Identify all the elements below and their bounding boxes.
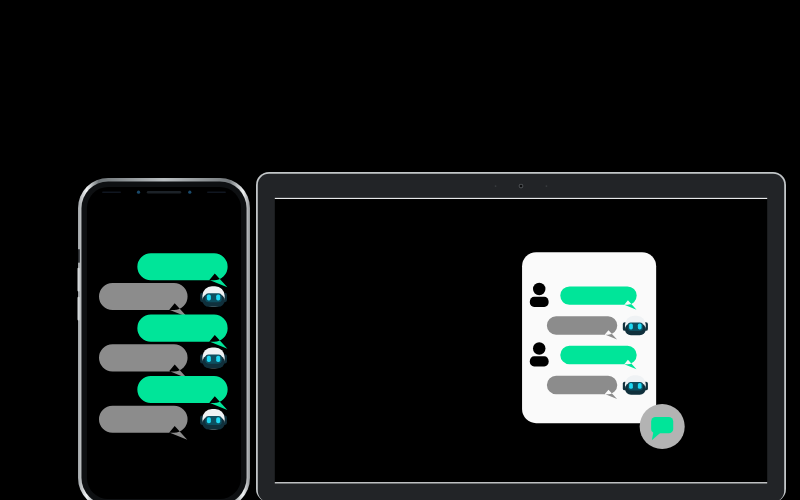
button[interactable]: Phone chat preview — [78, 178, 250, 500]
button[interactable]: Laptop chat app — [256, 172, 786, 500]
